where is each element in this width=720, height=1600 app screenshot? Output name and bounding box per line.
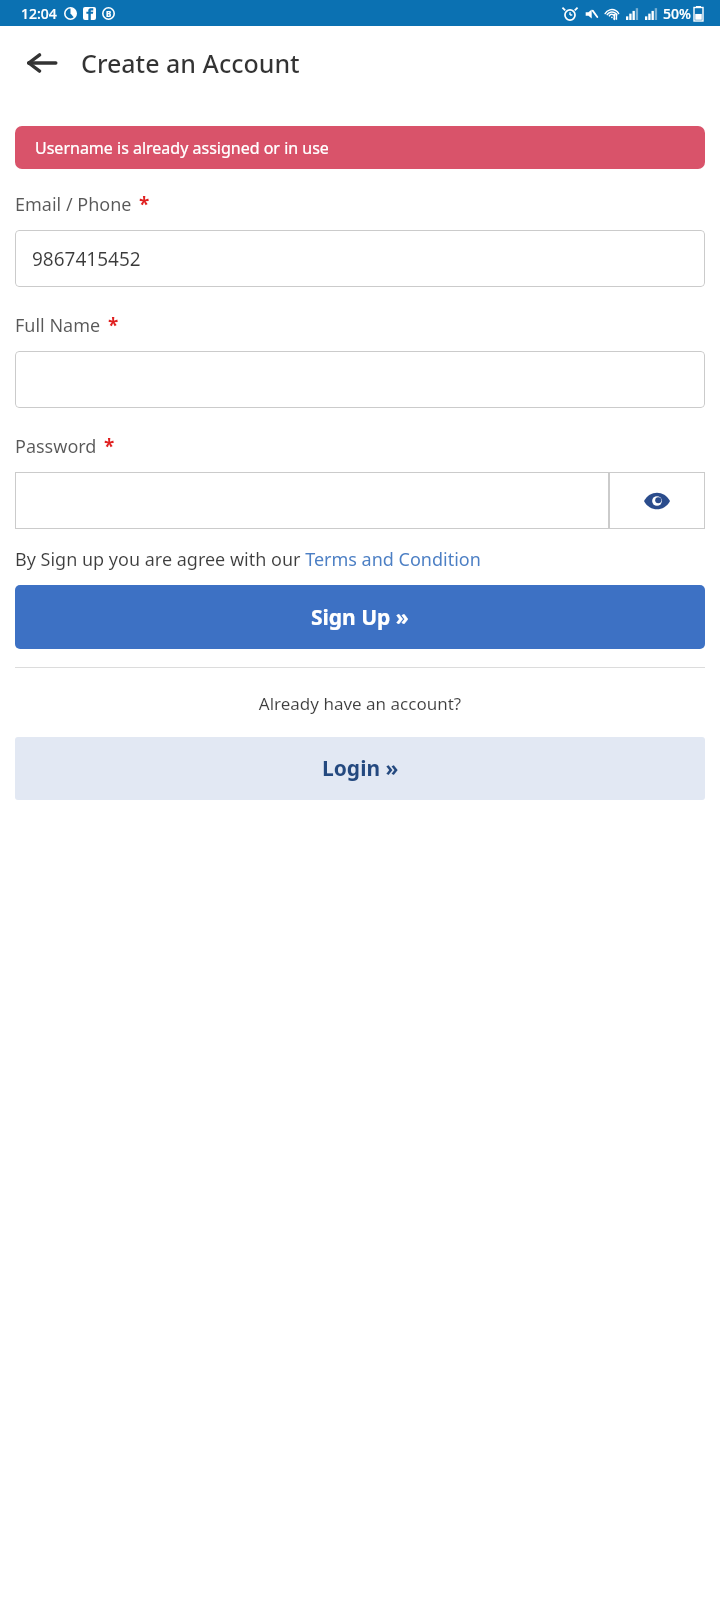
button[interactable]: 9867415452 <box>15 230 705 287</box>
staticText: Password <box>15 434 97 459</box>
button[interactable]: Login » <box>15 737 705 800</box>
staticText: Create an Account <box>81 46 300 80</box>
staticText: * <box>104 433 115 459</box>
staticText: 12:04 <box>21 4 57 23</box>
staticText: Email / Phone <box>15 192 132 217</box>
staticText: Login » <box>322 754 399 783</box>
button[interactable] <box>15 472 609 529</box>
staticText: * <box>139 191 150 217</box>
staticText: Username is already assigned or in use <box>35 137 329 159</box>
staticText: * <box>108 312 119 338</box>
button[interactable]: Sign Up » <box>15 585 705 649</box>
staticText: 9867415452 <box>32 246 141 272</box>
staticText: Full Name <box>15 313 101 338</box>
button[interactable] <box>15 351 705 408</box>
button[interactable]: Back <box>10 31 74 95</box>
button[interactable]: By Sign up you are agree with our Terms … <box>15 547 705 572</box>
staticText: Already have an account? <box>0 692 720 715</box>
staticText: 50% <box>663 4 691 23</box>
staticText: Sign Up » <box>311 603 409 632</box>
staticText: B <box>106 8 112 19</box>
button[interactable]: Show password <box>609 472 705 529</box>
